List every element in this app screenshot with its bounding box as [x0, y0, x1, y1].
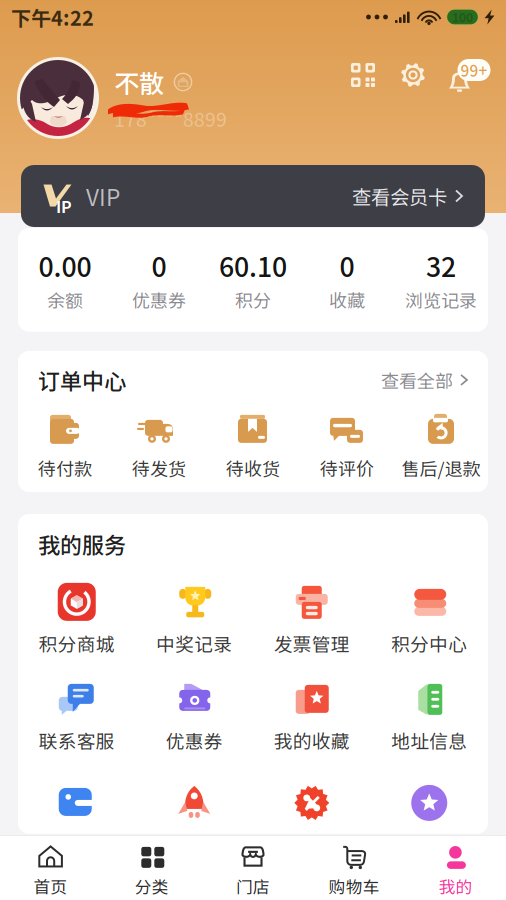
staticText: 下午4:22: [11, 2, 94, 31]
button[interactable]: 中奖记录: [135, 582, 253, 657]
staticText: 待评价: [320, 455, 374, 481]
staticText: 查看会员卡: [352, 182, 447, 210]
staticText: 99+: [460, 59, 487, 81]
staticText: 售后/退款: [401, 455, 480, 481]
button[interactable]: 积分商城: [18, 582, 135, 657]
button[interactable]: 会员: [370, 782, 488, 824]
staticText: VIP: [86, 180, 120, 212]
button[interactable]: 购物车: [304, 836, 405, 900]
button[interactable]: 扫一扫: [350, 62, 376, 88]
button[interactable]: 待评价: [300, 413, 394, 481]
staticText: 发票管理: [274, 630, 350, 657]
staticText: 积分: [235, 287, 271, 313]
staticText: 不散: [114, 64, 164, 100]
button[interactable]: 0: [300, 246, 394, 313]
button[interactable]: 积分中心: [370, 582, 488, 657]
staticText: 我的: [438, 874, 472, 898]
staticText: 0: [151, 246, 166, 285]
button[interactable]: 待收货: [206, 413, 300, 481]
button[interactable]: 首页: [0, 836, 101, 900]
button[interactable]: 分类: [101, 836, 202, 900]
button[interactable]: 我的收藏: [253, 679, 370, 754]
button[interactable]: IP: [21, 165, 485, 227]
button[interactable]: 优惠券: [135, 679, 253, 754]
button[interactable]: 查看全部: [381, 367, 468, 393]
button[interactable]: 0: [112, 246, 206, 313]
staticText: 中奖记录: [156, 630, 232, 657]
staticText: 优惠券: [132, 287, 186, 313]
staticText: 分类: [135, 874, 169, 898]
staticText: 浏览记录: [405, 287, 477, 313]
button[interactable]: 钱包: [18, 782, 135, 824]
staticText: 购物车: [329, 874, 380, 898]
button[interactable]: 地址信息: [370, 679, 488, 754]
staticText: IP: [56, 194, 72, 218]
staticText: 待发货: [132, 455, 186, 481]
staticText: 0.00: [38, 246, 91, 285]
button[interactable]: 设置: [400, 62, 426, 88]
button[interactable]: 门店: [202, 836, 304, 900]
button[interactable]: 消息通知: [450, 56, 488, 94]
staticText: 60.10: [219, 246, 287, 285]
staticText: 0: [339, 246, 354, 285]
button[interactable]: 联系客服: [18, 679, 135, 754]
button[interactable]: 售后/退款: [394, 413, 488, 481]
staticText: 32: [426, 246, 456, 285]
staticText: 门店: [236, 874, 270, 898]
staticText: 首页: [34, 874, 68, 898]
button[interactable]: 32: [394, 246, 488, 313]
staticText: 积分中心: [391, 630, 467, 657]
staticText: 待付款: [38, 455, 92, 481]
staticText: 我的服务: [38, 528, 126, 560]
staticText: 联系客服: [39, 727, 115, 754]
button[interactable]: 待发货: [112, 413, 206, 481]
button[interactable]: 0.00: [18, 246, 112, 313]
staticText: 余额: [47, 287, 83, 313]
staticText: 优惠券: [166, 727, 223, 754]
button[interactable]: 折扣: [253, 782, 370, 824]
staticText: 积分商城: [39, 630, 115, 657]
button[interactable]: 我的: [405, 836, 506, 900]
button[interactable]: 待付款: [18, 413, 112, 481]
staticText: 100: [452, 8, 473, 26]
button[interactable]: 60.10: [206, 246, 300, 313]
staticText: 我的收藏: [274, 727, 350, 754]
button[interactable]: 火箭: [135, 782, 253, 824]
staticText: 查看全部: [381, 367, 453, 393]
staticText: 178****8899: [114, 104, 227, 132]
staticText: 待收货: [226, 455, 280, 481]
button[interactable]: 发票管理: [253, 582, 370, 657]
staticText: 地址信息: [391, 727, 467, 754]
staticText: 订单中心: [38, 364, 126, 396]
staticText: 收藏: [329, 287, 365, 313]
